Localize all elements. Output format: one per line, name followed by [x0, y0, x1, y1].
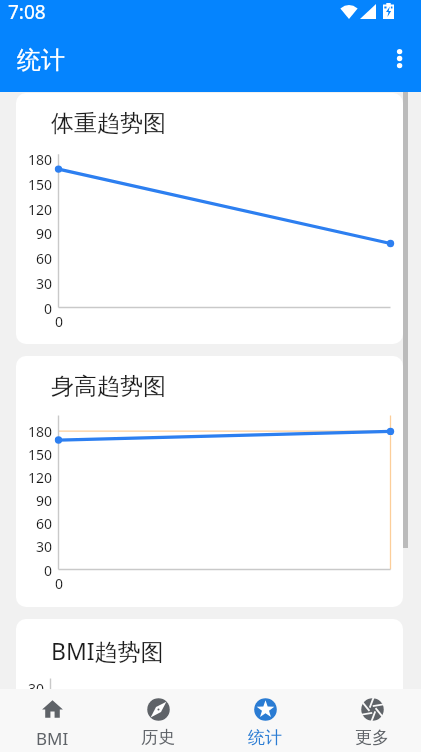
staticText: 120 — [27, 468, 52, 487]
staticText: 30 — [27, 679, 44, 689]
button[interactable]: 历史 — [106, 689, 210, 752]
staticText: 150 — [27, 445, 52, 464]
staticText: 统计 — [17, 45, 65, 75]
staticText: 0 — [43, 299, 52, 318]
staticText: 30 — [35, 274, 52, 293]
staticText: 0 — [55, 574, 64, 593]
staticText: 历史 — [141, 727, 175, 748]
staticText: 7:08 — [8, 0, 46, 25]
button[interactable]: BMI趋势图 — [16, 619, 403, 689]
button[interactable]: 体重趋势图 — [16, 93, 403, 344]
staticText: 30 — [35, 537, 52, 556]
staticText: BMI — [36, 727, 69, 750]
staticText: 0 — [43, 561, 52, 580]
staticText: 90 — [35, 224, 52, 243]
staticText: 0 — [55, 312, 64, 331]
staticText: 身高趋势图 — [51, 372, 166, 401]
staticText: 60 — [35, 514, 52, 533]
button[interactable]: 更多 — [320, 689, 421, 752]
button[interactable]: 身高趋势图 — [16, 356, 403, 607]
button[interactable]: 统计 — [213, 689, 317, 752]
staticText: 90 — [35, 491, 52, 510]
staticText: 180 — [27, 422, 52, 441]
staticText: 180 — [27, 150, 52, 169]
staticText: 150 — [27, 175, 52, 194]
staticText: BMI趋势图 — [51, 635, 164, 666]
staticText: 60 — [35, 249, 52, 268]
staticText: 统计 — [248, 727, 282, 748]
staticText: 更多 — [355, 727, 389, 748]
staticText: 120 — [27, 200, 52, 219]
button[interactable]: More options — [376, 35, 421, 83]
staticText: 体重趋势图 — [51, 109, 166, 138]
button[interactable]: BMI — [0, 689, 104, 752]
